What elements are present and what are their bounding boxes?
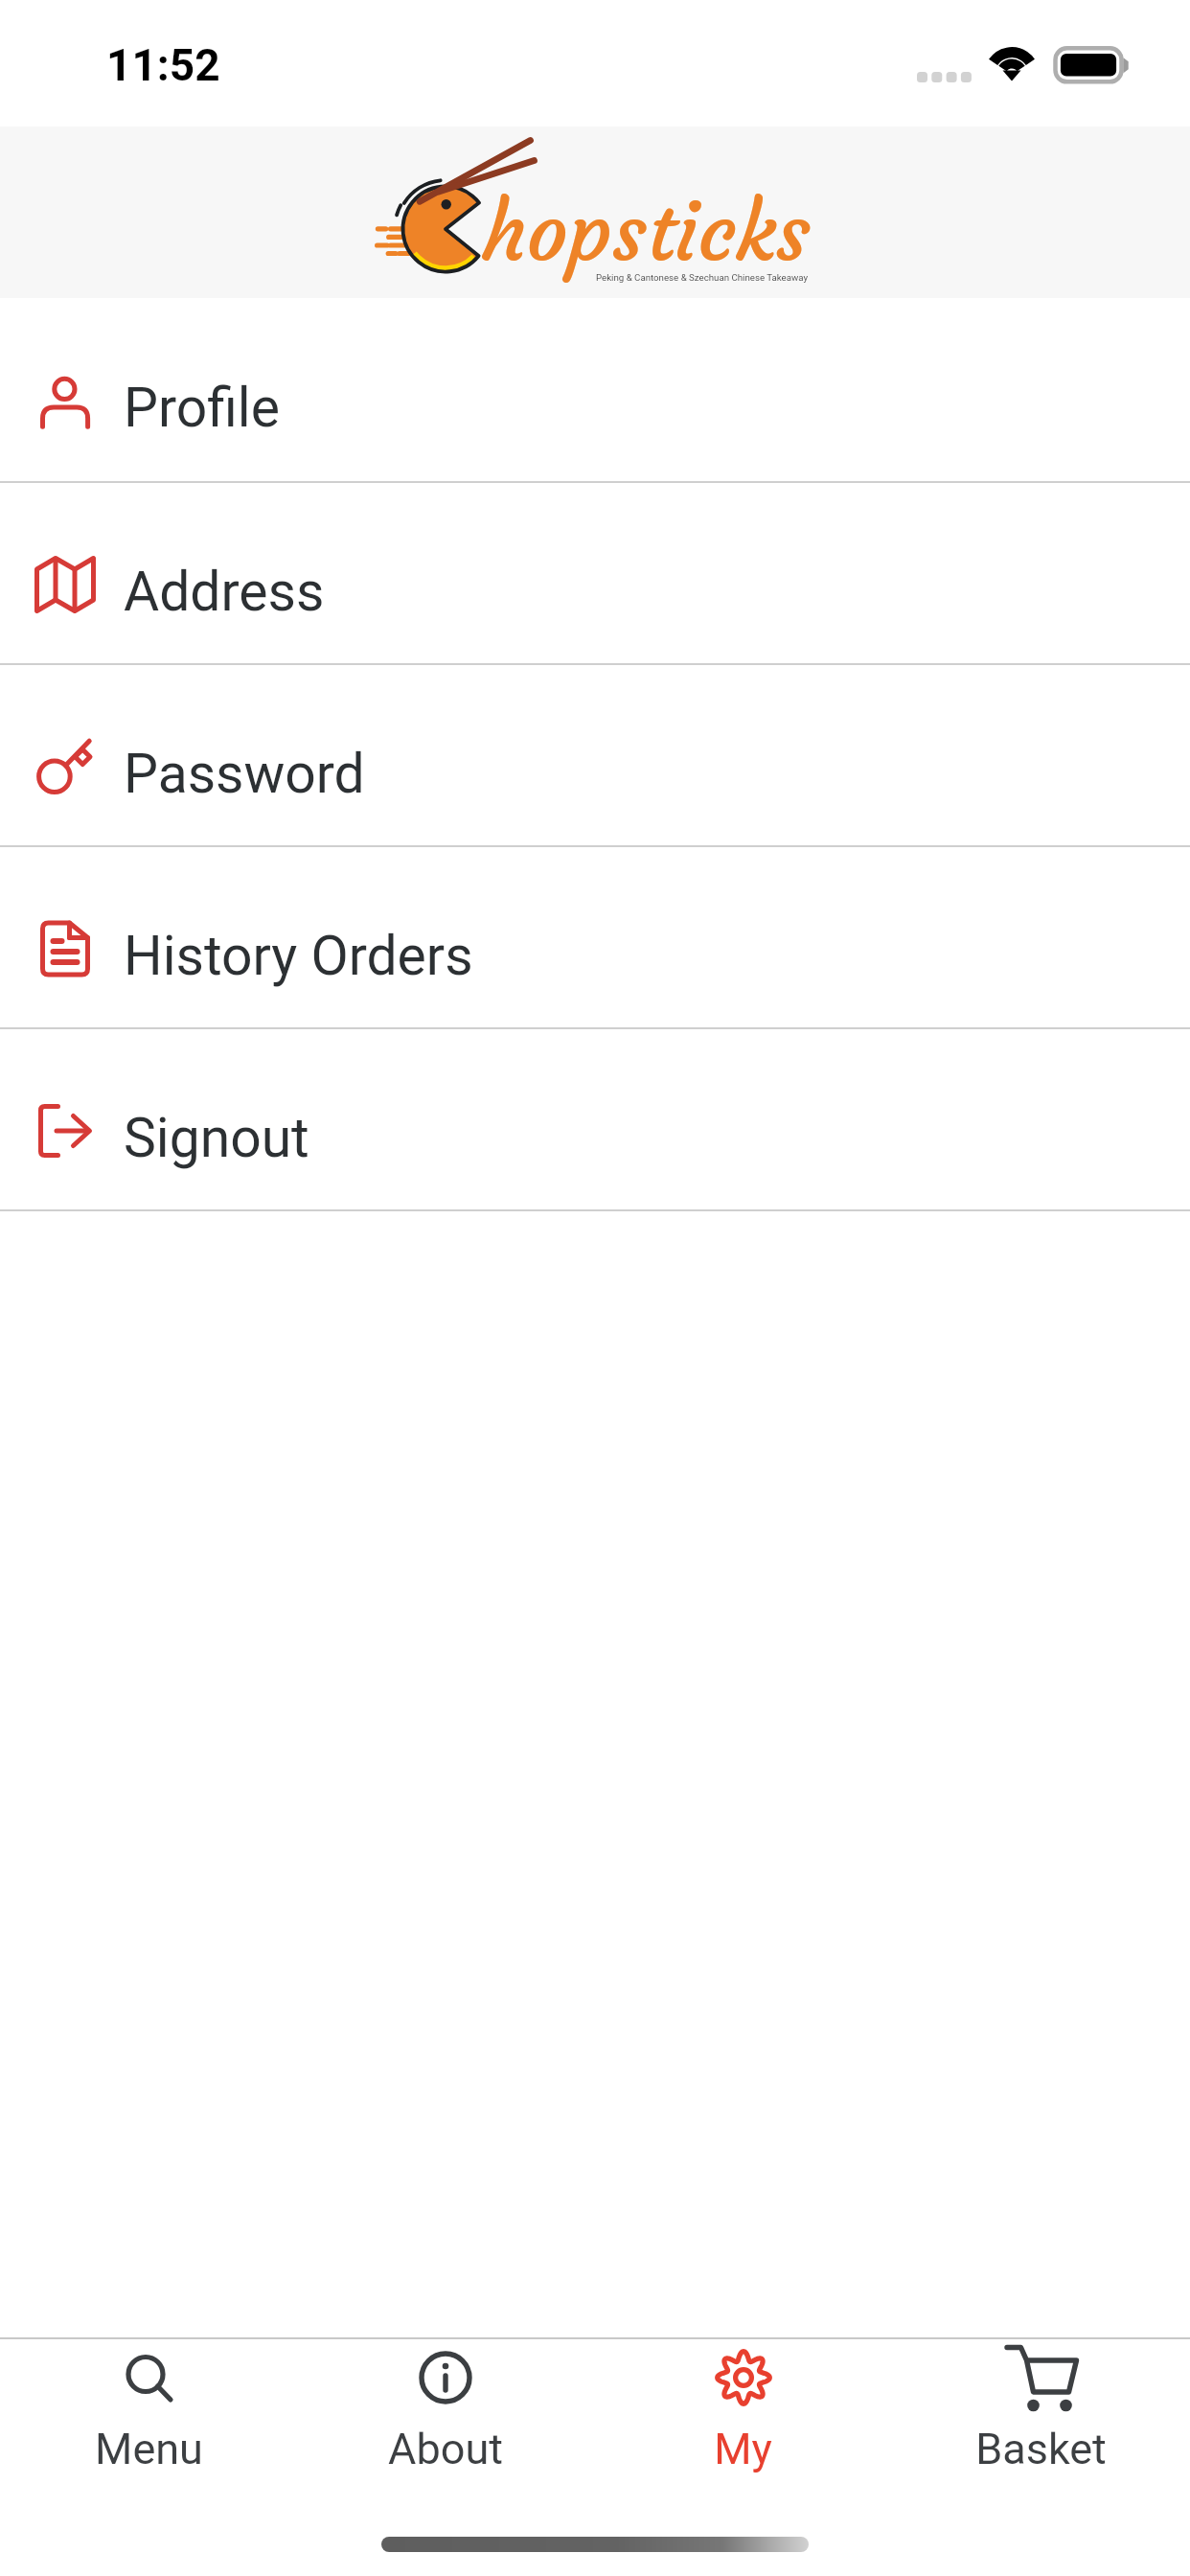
button[interactable]: Password [0,665,1190,845]
staticText: Signout [124,1106,309,1170]
button[interactable]: Signout [0,1029,1190,1209]
button[interactable]: My [594,2339,892,2531]
button[interactable]: About [297,2339,594,2531]
staticText: About [388,2424,503,2474]
staticText: Password [124,742,365,806]
button[interactable]: Menu [0,2339,297,2531]
staticText: History Orders [124,924,473,988]
staticText: Basket [975,2424,1107,2474]
staticText: hopsticks [482,182,811,283]
button[interactable]: History Orders [0,847,1190,1027]
button[interactable]: Address [0,483,1190,663]
staticText: 11:52 [106,39,220,91]
staticText: Peking & Cantonese & Szechuan Chinese Ta… [596,272,809,283]
staticText: Profile [124,376,280,440]
button[interactable]: Basket [892,2339,1190,2531]
staticText: Address [124,560,325,624]
staticText: My [714,2424,772,2474]
button[interactable]: Profile [0,298,1190,481]
staticText: Menu [95,2424,203,2474]
